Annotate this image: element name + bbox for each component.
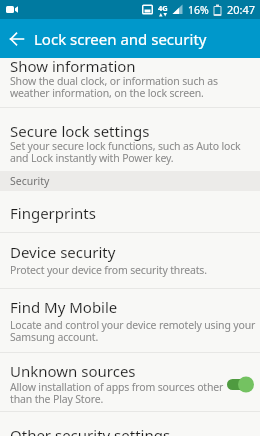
button[interactable]: Find My Mobile <box>0 288 260 352</box>
staticText: Show the dual clock, or information such… <box>10 74 218 100</box>
staticText: Fingerprints <box>10 203 96 223</box>
button[interactable]: Unknown sources <box>0 352 260 411</box>
staticText: Security <box>10 174 50 188</box>
button[interactable]: Secure lock settings <box>0 108 260 170</box>
button[interactable]: Other security settings <box>0 411 260 436</box>
staticText: Lock screen and security <box>34 29 207 49</box>
staticText: Find My Mobile <box>10 297 118 317</box>
staticText: Unknown sources <box>10 361 136 381</box>
staticText: 16% <box>188 3 209 17</box>
button[interactable] <box>0 19 34 58</box>
staticText: Show information <box>10 56 136 76</box>
staticText: Other security settings <box>10 425 171 436</box>
staticText: 4G <box>158 3 168 13</box>
button[interactable]: Device security <box>0 232 260 288</box>
staticText: Device security <box>10 242 116 262</box>
staticText: Set your secure lock functions, such as … <box>10 139 241 165</box>
staticText: 20:47 <box>227 2 256 17</box>
staticText: Secure lock settings <box>10 121 150 141</box>
staticText: Allow installation of apps from sources … <box>10 380 224 406</box>
staticText: Locate and control your device remotely … <box>10 318 256 344</box>
button[interactable]: Show information <box>0 58 260 107</box>
button[interactable]: Fingerprints <box>0 191 260 232</box>
staticText: Protect your device from security threat… <box>10 263 207 277</box>
